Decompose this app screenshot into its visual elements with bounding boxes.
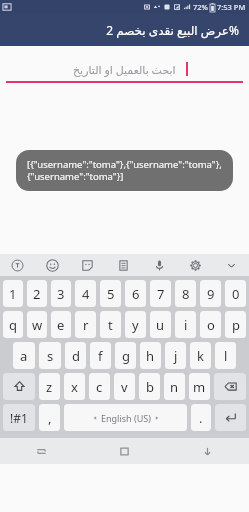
staticText: !#1	[10, 410, 28, 426]
staticText: a	[20, 347, 28, 365]
button[interactable]: b	[139, 373, 160, 400]
button[interactable]: k	[190, 342, 211, 369]
staticText: n	[170, 378, 179, 396]
button[interactable]: Hide keyboard	[166, 438, 249, 464]
staticText: x	[71, 378, 78, 396]
staticText: z	[46, 378, 53, 396]
button[interactable]: 0	[225, 280, 246, 307]
staticText: m	[193, 378, 206, 396]
staticText: 8	[182, 285, 190, 303]
button[interactable]: Voice input	[141, 254, 177, 276]
button[interactable]: n	[164, 373, 185, 400]
staticText: [{"username":"toma"},{"username":"toma"}…	[27, 158, 222, 183]
staticText: .	[199, 409, 203, 427]
staticText: 72%	[193, 2, 208, 12]
button[interactable]: Emoji	[35, 254, 70, 276]
button[interactable]: o	[200, 311, 221, 338]
staticText: o	[207, 316, 215, 334]
button[interactable]: Settings	[177, 254, 213, 276]
button[interactable]: p	[225, 311, 246, 338]
staticText: l	[224, 347, 228, 365]
staticText: 9	[207, 285, 215, 303]
staticText: English (US)	[101, 412, 151, 424]
staticText: v	[121, 378, 128, 396]
button[interactable]: x	[64, 373, 85, 400]
staticText: 3	[57, 285, 65, 303]
button[interactable]: r	[75, 311, 96, 338]
button[interactable]: 7	[150, 280, 171, 307]
staticText: k	[197, 347, 204, 365]
staticText: 4	[82, 285, 90, 303]
button[interactable]: .	[191, 404, 211, 431]
button[interactable]: d	[65, 342, 86, 369]
staticText: p	[232, 316, 240, 334]
staticText: q	[9, 316, 17, 334]
button[interactable]: m	[189, 373, 210, 400]
button[interactable]: c	[89, 373, 110, 400]
button[interactable]: ,	[39, 404, 60, 431]
button[interactable]: Backspace	[214, 373, 246, 400]
button[interactable]: i	[175, 311, 196, 338]
staticText: 2	[33, 285, 41, 303]
staticText: ,	[48, 409, 52, 427]
button[interactable]: s	[39, 342, 61, 369]
staticText: j	[174, 347, 178, 365]
button[interactable]: 1	[3, 280, 23, 307]
staticText: f	[98, 347, 103, 365]
button[interactable]: Enter	[215, 404, 246, 431]
staticText: d	[72, 347, 80, 365]
button[interactable]: u	[150, 311, 171, 338]
button[interactable]: 8	[175, 280, 196, 307]
staticText: 0	[232, 285, 240, 303]
staticText: b	[146, 378, 154, 396]
staticText: u	[156, 316, 165, 334]
button[interactable]: g	[115, 342, 136, 369]
button[interactable]: Clipboard	[105, 254, 141, 276]
staticText: e	[57, 316, 65, 334]
staticText: w	[32, 316, 43, 334]
staticText: 1	[9, 285, 17, 303]
staticText: 6	[132, 285, 140, 303]
button[interactable]: Translate	[0, 254, 35, 276]
staticText: i	[184, 316, 188, 334]
button[interactable]: w	[27, 311, 47, 338]
button[interactable]: y	[125, 311, 146, 338]
button[interactable]: a	[13, 342, 35, 369]
button[interactable]: !#1	[3, 404, 35, 431]
button[interactable]: Shift	[3, 373, 35, 400]
staticText: t	[108, 316, 113, 334]
staticText: ابحث بالعميل او التاريخ	[73, 62, 176, 77]
button[interactable]: English (US)	[64, 404, 187, 431]
button[interactable]: Stickers	[70, 254, 105, 276]
button[interactable]: 9	[200, 280, 221, 307]
button[interactable]: 2	[27, 280, 47, 307]
button[interactable]: 4	[75, 280, 96, 307]
button[interactable]: Home	[83, 438, 166, 464]
button[interactable]: Recent apps	[0, 438, 83, 464]
button[interactable]: l	[215, 342, 236, 369]
button[interactable]: v	[114, 373, 135, 400]
staticText: r	[83, 316, 89, 334]
staticText: 7:53 PM	[217, 2, 246, 12]
staticText: h	[146, 347, 155, 365]
staticText: y	[132, 316, 139, 334]
button[interactable]: q	[3, 311, 23, 338]
button[interactable]: j	[165, 342, 186, 369]
button[interactable]: 6	[125, 280, 146, 307]
staticText: عرض البيع نقدى بخصم 2%	[106, 22, 239, 38]
button[interactable]: Expand	[213, 254, 249, 276]
staticText: s	[47, 347, 54, 365]
button[interactable]: z	[39, 373, 60, 400]
button[interactable]: h	[140, 342, 161, 369]
button[interactable]: 3	[51, 280, 71, 307]
button[interactable]: e	[51, 311, 71, 338]
staticText: g	[122, 347, 130, 365]
button[interactable]: t	[100, 311, 121, 338]
staticText: 7	[157, 285, 165, 303]
button[interactable]: f	[90, 342, 111, 369]
staticText: c	[96, 378, 103, 396]
button[interactable]: ابحث بالعميل او التاريخ	[0, 60, 249, 78]
button[interactable]: 5	[100, 280, 121, 307]
staticText: 5	[107, 285, 115, 303]
